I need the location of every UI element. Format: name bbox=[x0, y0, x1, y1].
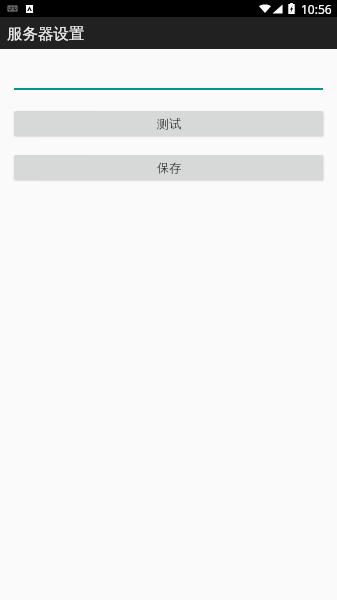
staticText: 服务器设置 bbox=[7, 24, 85, 44]
button[interactable]: 保存 bbox=[14, 155, 323, 180]
button[interactable]: 服务器地址输入框 bbox=[14, 71, 323, 90]
other: Keyboard bbox=[8, 6, 17, 11]
other: Battery charging bbox=[288, 3, 295, 14]
other: Wi-Fi bbox=[259, 4, 271, 13]
staticText: 保存 bbox=[157, 160, 181, 175]
staticText: 测试 bbox=[157, 116, 181, 131]
other: App notification bbox=[26, 5, 33, 13]
other: Mobile signal bbox=[272, 4, 283, 14]
button[interactable]: 测试 bbox=[14, 111, 323, 136]
staticText: 10:56 bbox=[301, 1, 332, 17]
